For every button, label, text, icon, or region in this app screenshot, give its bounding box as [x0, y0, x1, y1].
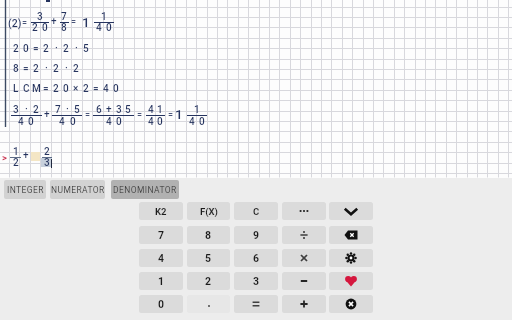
staticText: + — [51, 16, 57, 28]
button[interactable] — [282, 249, 326, 267]
button[interactable]: DENOMINATOR — [111, 180, 179, 199]
button[interactable]: NUMERATOR — [50, 180, 105, 199]
button[interactable] — [329, 249, 373, 267]
staticText: 3 — [13, 104, 19, 116]
staticText: 2 — [43, 43, 49, 55]
staticText: 0 — [158, 298, 165, 310]
button[interactable] — [282, 202, 326, 220]
staticText: 2 — [63, 43, 69, 55]
button[interactable]: 0 — [139, 295, 183, 313]
staticText: 0 — [116, 116, 122, 128]
staticText: 7 — [158, 229, 165, 241]
staticText: 3 — [253, 275, 260, 287]
staticText: 3 — [116, 104, 122, 116]
staticText: 2 — [73, 63, 79, 75]
staticText: 7 — [61, 11, 67, 23]
staticText: 2 — [53, 83, 59, 95]
staticText: 4 — [96, 22, 102, 34]
button[interactable] — [329, 272, 373, 290]
staticText: 9 — [253, 229, 260, 241]
staticText: > — [2, 152, 7, 163]
button[interactable] — [282, 226, 326, 244]
staticText: 2 — [32, 22, 38, 34]
staticText: + — [23, 150, 29, 162]
button[interactable] — [329, 226, 373, 244]
button[interactable]: 5 — [187, 249, 230, 267]
button[interactable] — [329, 295, 373, 313]
staticText: 4 — [158, 252, 165, 264]
staticText: + — [106, 104, 112, 116]
staticText: 4 — [18, 116, 24, 128]
staticText: 0 — [42, 22, 48, 34]
staticText: 8 — [13, 63, 19, 75]
staticText: 4 — [59, 116, 65, 128]
button[interactable] — [282, 272, 326, 290]
staticText: 4 — [148, 116, 154, 128]
button[interactable]: 6 — [234, 249, 278, 267]
staticText: 5 — [205, 252, 212, 264]
staticText: = — [168, 110, 174, 121]
staticText: 4 — [189, 116, 195, 128]
staticText: = — [137, 110, 143, 121]
staticText: 0 — [63, 83, 69, 95]
staticText: 3 — [44, 157, 50, 169]
staticText: 2 — [83, 83, 89, 95]
button[interactable]: C — [234, 202, 278, 220]
staticText: 0 — [106, 22, 112, 34]
button[interactable]: F(X) — [187, 202, 230, 220]
staticText: F(X) — [200, 206, 218, 217]
staticText: 2 — [33, 63, 39, 75]
staticText: 2 — [13, 43, 19, 55]
staticText: = — [71, 17, 77, 28]
staticText: INTEGER — [7, 185, 44, 195]
staticText: · — [65, 63, 68, 75]
staticText: DENOMINATOR — [113, 185, 177, 195]
staticText: 0 — [70, 116, 76, 128]
staticText: 4 — [148, 104, 154, 116]
staticText: M — [32, 83, 41, 95]
button[interactable]: 7 — [139, 226, 183, 244]
button[interactable]: INTEGER — [4, 180, 46, 199]
staticText: 2 — [33, 104, 39, 116]
button[interactable]: K2 — [139, 202, 183, 220]
staticText: 0 — [113, 83, 119, 95]
staticText: C — [253, 206, 260, 217]
button[interactable] — [282, 295, 326, 313]
staticText: 1 — [82, 14, 90, 30]
button[interactable]: 4 — [139, 249, 183, 267]
button[interactable] — [329, 202, 373, 220]
staticText: 5 — [83, 43, 89, 55]
staticText: 0 — [199, 116, 205, 128]
staticText: = — [23, 63, 29, 75]
button[interactable]: 3 — [234, 272, 278, 290]
staticText: 0 — [157, 116, 163, 128]
staticText: · — [45, 63, 48, 75]
staticText: 5 — [74, 104, 80, 116]
staticText: · — [75, 43, 78, 55]
staticText: 6 — [253, 252, 260, 264]
staticText: NUMERATOR — [51, 185, 105, 195]
button[interactable]: 2 — [187, 272, 230, 290]
staticText: = — [33, 43, 39, 55]
staticText: 4 — [103, 83, 109, 95]
button[interactable]: 8 — [187, 226, 230, 244]
staticText: 2 — [53, 63, 59, 75]
button[interactable]: 1 — [139, 272, 183, 290]
staticText: 4 — [106, 116, 112, 128]
staticText: · — [55, 43, 58, 55]
staticText: 0 — [23, 43, 29, 55]
staticText: 2 — [13, 157, 19, 169]
button[interactable] — [187, 295, 230, 313]
staticText: C — [23, 83, 30, 95]
staticText: K2 — [155, 206, 167, 217]
button[interactable] — [234, 295, 278, 313]
staticText: = — [22, 18, 28, 29]
staticText: 2 — [205, 275, 212, 287]
staticText: · — [66, 104, 69, 116]
button[interactable]: 9 — [234, 226, 278, 244]
staticText: 7 — [55, 104, 61, 116]
staticText: 1 — [157, 104, 163, 116]
staticText: 1 — [101, 11, 107, 23]
staticText: = — [43, 83, 49, 95]
staticText: 1 — [175, 106, 183, 122]
